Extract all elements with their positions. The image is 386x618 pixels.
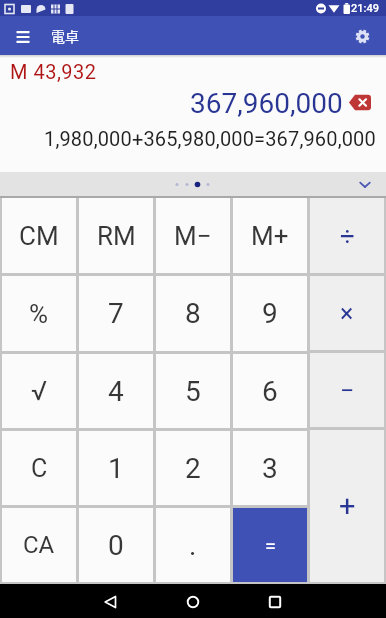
staticText: × — [340, 299, 354, 328]
button[interactable]: C — [2, 431, 76, 505]
staticText: 0 — [108, 529, 124, 562]
button[interactable]: 9 — [233, 276, 307, 351]
button[interactable] — [167, 585, 219, 618]
staticText: % — [29, 299, 49, 329]
staticText: . — [189, 529, 197, 562]
staticText: 電卓 — [51, 26, 79, 46]
staticText: 367,960,000 — [190, 87, 343, 120]
staticText: 21:49 — [351, 2, 379, 15]
button[interactable]: 0 — [79, 508, 153, 582]
staticText: 1 — [108, 452, 124, 485]
staticText: M+ — [251, 221, 289, 251]
staticText: − — [340, 376, 355, 405]
staticText: 4 — [108, 375, 124, 408]
button[interactable]: 2 — [156, 431, 230, 505]
button[interactable]: = — [233, 508, 307, 582]
staticText: 3 — [262, 452, 278, 485]
staticText: √ — [31, 375, 48, 407]
button[interactable] — [85, 585, 137, 618]
button[interactable] — [349, 94, 371, 111]
button[interactable]: . — [156, 508, 230, 582]
staticText: M 43,932 — [10, 60, 97, 83]
button[interactable] — [249, 585, 301, 618]
staticText: M− — [174, 221, 212, 251]
staticText: CM — [19, 221, 59, 251]
button[interactable]: √ — [2, 354, 76, 428]
button[interactable]: % — [2, 276, 76, 351]
button[interactable]: + — [310, 430, 384, 582]
button[interactable]: 3 — [233, 431, 307, 505]
button[interactable]: − — [310, 353, 384, 427]
button[interactable] — [8, 21, 38, 51]
button[interactable]: CA — [2, 508, 76, 582]
staticText: 8 — [185, 297, 201, 330]
button[interactable]: M+ — [233, 198, 307, 273]
button[interactable] — [351, 25, 373, 47]
button[interactable]: 1 — [79, 431, 153, 505]
button[interactable]: 5 — [156, 354, 230, 428]
staticText: 9 — [262, 297, 278, 330]
staticText: C — [31, 454, 48, 483]
staticText: RM — [97, 221, 136, 251]
button[interactable]: M− — [156, 198, 230, 273]
button[interactable]: 8 — [156, 276, 230, 351]
staticText: 2 — [185, 452, 201, 485]
button[interactable]: ÷ — [310, 198, 384, 273]
button[interactable]: × — [310, 276, 384, 350]
button[interactable]: 4 — [79, 354, 153, 428]
button[interactable]: 7 — [79, 276, 153, 351]
staticText: 7 — [108, 297, 124, 330]
staticText: + — [339, 489, 356, 523]
staticText: 5 — [185, 375, 201, 408]
staticText: 6 — [262, 375, 278, 408]
button[interactable]: RM — [79, 198, 153, 273]
staticText: CA — [23, 531, 55, 559]
button[interactable]: CM — [2, 198, 76, 273]
staticText: 1,980,000+365,980,000=367,960,000 — [44, 127, 376, 150]
staticText: = — [265, 534, 276, 557]
button[interactable]: 6 — [233, 354, 307, 428]
staticText: ÷ — [340, 221, 355, 251]
